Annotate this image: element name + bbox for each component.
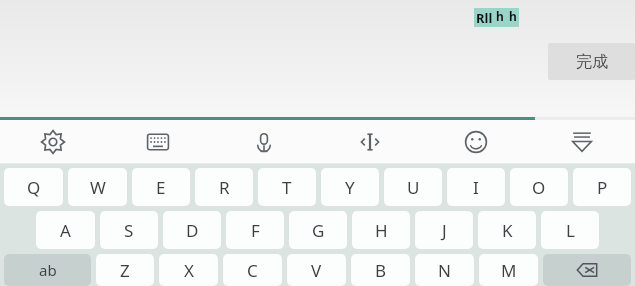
button[interactable]: K [478, 211, 536, 249]
staticText: P [597, 176, 608, 199]
staticText: C [247, 259, 258, 282]
staticText: M [501, 259, 517, 282]
button[interactable]: X [159, 254, 218, 286]
button[interactable]: D [163, 211, 221, 249]
button[interactable]: Z [96, 254, 154, 286]
button[interactable]: L [541, 211, 599, 249]
staticText: A [60, 219, 71, 242]
staticText: X [184, 259, 194, 282]
staticText: T [282, 176, 292, 199]
staticText: O [532, 176, 546, 199]
staticText: S [124, 219, 134, 242]
staticText: Y [345, 176, 355, 199]
staticText: F [251, 219, 260, 242]
button[interactable]: Move cursor [317, 120, 423, 164]
button[interactable]: B [351, 254, 410, 286]
staticText: E [156, 176, 166, 199]
button[interactable]: Voice input [211, 120, 317, 164]
button[interactable]: Q [4, 168, 63, 206]
staticText: B [375, 259, 387, 282]
button[interactable]: A [36, 211, 95, 249]
staticText: 完成 [576, 52, 608, 72]
button[interactable]: I [447, 168, 505, 206]
button[interactable]: W [68, 168, 127, 206]
button[interactable]: C [223, 254, 282, 286]
staticText: L [566, 219, 575, 242]
button[interactable]: 完成 [548, 43, 635, 80]
button[interactable]: P [573, 168, 631, 206]
staticText: I [473, 176, 479, 199]
button[interactable]: H [352, 211, 410, 249]
staticText: U [407, 176, 420, 199]
staticText: ab [39, 260, 57, 280]
staticText: H [375, 219, 388, 242]
button[interactable]: Rll [474, 4, 519, 30]
button[interactable]: M [479, 254, 538, 286]
staticText: Q [27, 176, 41, 199]
staticText: W [90, 176, 106, 199]
button[interactable]: R [195, 168, 253, 206]
button[interactable]: E [132, 168, 190, 206]
button[interactable]: G [289, 211, 347, 249]
staticText: N [438, 259, 451, 282]
button[interactable]: ab [4, 254, 91, 286]
staticText: h [509, 8, 517, 24]
staticText: K [502, 219, 513, 242]
button[interactable]: V [287, 254, 346, 286]
button[interactable]: O [510, 168, 568, 206]
staticText: Z [120, 259, 130, 282]
staticText: Rll [476, 9, 493, 27]
staticText: R [219, 176, 230, 199]
button[interactable]: S [100, 211, 158, 249]
staticText: G [312, 219, 325, 242]
staticText: D [186, 219, 199, 242]
staticText: h [496, 8, 504, 24]
staticText: V [311, 259, 322, 282]
button[interactable]: Hide keyboard [529, 120, 635, 164]
button[interactable]: J [415, 211, 473, 249]
button[interactable]: Y [321, 168, 379, 206]
staticText: J [442, 219, 447, 242]
button[interactable]: Settings [0, 120, 105, 164]
button[interactable]: T [258, 168, 316, 206]
button[interactable]: Backspace [543, 254, 631, 286]
button[interactable]: N [415, 254, 474, 286]
button[interactable]: F [226, 211, 284, 249]
button[interactable]: Keyboard layout [105, 120, 211, 164]
button[interactable]: U [384, 168, 442, 206]
button[interactable]: Emoji [423, 120, 529, 164]
